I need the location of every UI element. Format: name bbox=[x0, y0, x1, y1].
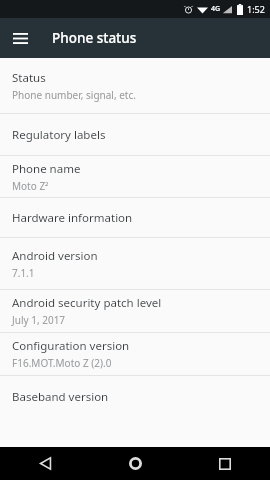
staticText: Phone number, signal, etc. bbox=[12, 88, 136, 102]
button[interactable]: Home bbox=[90, 447, 180, 480]
staticText: Hardware information bbox=[12, 210, 133, 226]
staticText: 4G bbox=[211, 4, 221, 14]
staticText: Phone name bbox=[12, 161, 81, 177]
button[interactable]: Back bbox=[0, 447, 90, 480]
button[interactable]: Recent apps bbox=[180, 447, 270, 480]
button[interactable]: Hardware information bbox=[0, 198, 270, 237]
staticText: July 1, 2017 bbox=[12, 313, 66, 327]
staticText: Regulatory labels bbox=[12, 127, 106, 143]
button[interactable]: Open navigation drawer bbox=[7, 25, 33, 51]
staticText: Configuration version bbox=[12, 338, 130, 354]
staticText: Android version bbox=[12, 248, 98, 264]
button[interactable]: Configuration version bbox=[0, 333, 270, 375]
button[interactable]: Android security patch level bbox=[0, 290, 270, 332]
button[interactable]: Phone name bbox=[0, 156, 270, 197]
staticText: Baseband version bbox=[12, 389, 109, 405]
button[interactable]: Regulatory labels bbox=[0, 114, 270, 155]
staticText: Phone status bbox=[52, 29, 137, 47]
button[interactable]: Baseband version bbox=[0, 376, 270, 417]
staticText: Android security patch level bbox=[12, 295, 162, 311]
staticText: 7.1.1 bbox=[12, 266, 35, 280]
staticText: Moto Z² bbox=[12, 179, 49, 193]
staticText: 1:52 bbox=[247, 3, 265, 15]
button[interactable]: Android version bbox=[0, 238, 270, 289]
staticText: Status bbox=[12, 70, 46, 86]
staticText: F16.MOT.Moto Z (2).0 bbox=[12, 356, 112, 370]
button[interactable]: Status bbox=[0, 58, 270, 113]
